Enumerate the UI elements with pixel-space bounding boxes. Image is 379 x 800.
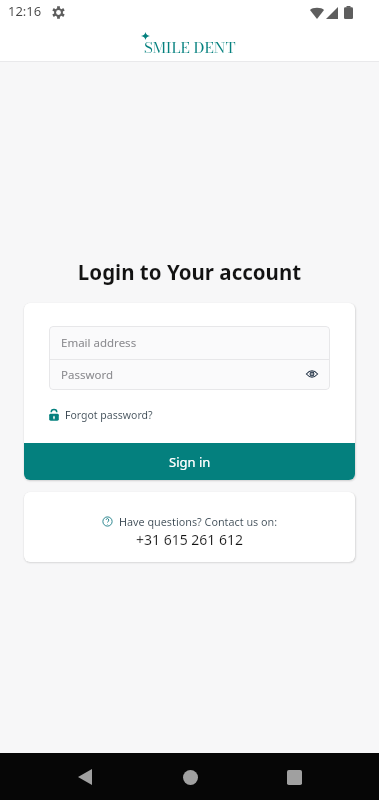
staticText: Sign in (169, 453, 211, 471)
staticText: Password (61, 367, 114, 383)
staticText: Forgot password? (65, 408, 153, 422)
staticText: SMILE DENT (144, 36, 236, 59)
staticText: Login to Your account (0, 258, 379, 286)
button[interactable]: Show password (303, 365, 321, 383)
staticText: Have questions? Contact us on: (119, 514, 278, 529)
button[interactable]: Sign in (24, 443, 355, 480)
button[interactable]: Recent apps (274, 757, 314, 797)
staticText: 12:16 (8, 2, 42, 20)
staticText: Email address (61, 335, 137, 351)
button[interactable]: Home (170, 757, 210, 797)
button[interactable]: Password (49, 360, 330, 390)
button[interactable]: Forgot password? (49, 403, 153, 427)
button[interactable]: Have questions? Contact us on: (24, 492, 355, 562)
button[interactable]: Back (65, 757, 105, 797)
button[interactable]: Email address (49, 326, 330, 359)
staticText: +31 615 261 612 (136, 530, 244, 549)
